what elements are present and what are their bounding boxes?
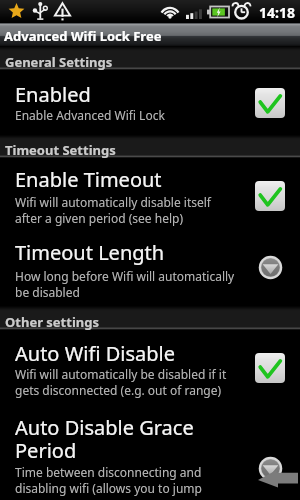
- staticText: Wifi will automatically be disabled if i…: [15, 366, 227, 382]
- staticText: Timeout Length: [15, 239, 165, 266]
- button[interactable]: Auto Disable Grace Period: [0, 409, 300, 500]
- button[interactable]: Advanced Wifi Lock Free: [0, 23, 300, 46]
- staticText: Timeout Settings: [5, 141, 116, 159]
- staticText: Wifi will automatically disable itself: [15, 194, 211, 210]
- staticText: Enable Timeout: [15, 166, 162, 193]
- button[interactable]: Enabled: [0, 70, 300, 135]
- button[interactable]: Auto Wifi Disable: [0, 330, 300, 409]
- staticText: gets disconnected (e.g. out of range): [15, 382, 222, 398]
- staticText: General Settings: [5, 53, 113, 71]
- staticText: Enabled: [15, 81, 91, 108]
- button[interactable]: Open options: [255, 252, 285, 282]
- staticText: Auto Wifi Disable: [15, 340, 175, 367]
- staticText: be disabled: [15, 284, 80, 300]
- staticText: Enable Advanced Wifi Lock: [15, 107, 165, 123]
- staticText: Time between disconnecting and: [15, 464, 202, 480]
- staticText: after a given period (see help): [15, 210, 183, 226]
- button[interactable]: Toggle setting: [255, 181, 285, 211]
- button[interactable]: Toggle setting: [255, 88, 285, 118]
- staticText: disabling wifi (allows you to jump: [15, 480, 202, 496]
- button[interactable]: Enable Timeout: [0, 158, 300, 238]
- button[interactable]: Open options: [255, 453, 285, 483]
- staticText: 14:18: [259, 3, 295, 22]
- button[interactable]: Toggle setting: [255, 353, 285, 383]
- staticText: Advanced Wifi Lock Free: [4, 27, 162, 45]
- staticText: How long before Wifi will automatically: [15, 268, 235, 284]
- staticText: Other settings: [5, 313, 99, 331]
- staticText: Auto Disable Grace Period: [15, 414, 194, 464]
- button[interactable]: Timeout Length: [0, 238, 300, 307]
